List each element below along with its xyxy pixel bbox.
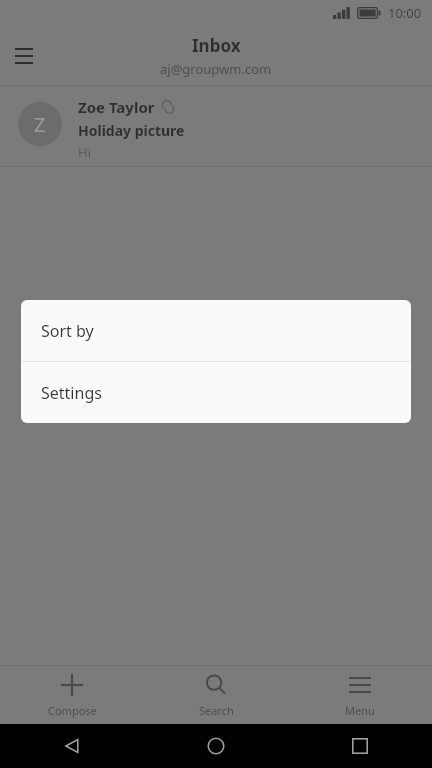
staticText: Compose xyxy=(48,703,97,718)
staticText: Inbox xyxy=(192,34,241,57)
staticText: Zoe Taylor xyxy=(78,97,155,117)
button[interactable]: Home xyxy=(199,729,233,763)
staticText: aj@groupwm.com xyxy=(160,60,272,78)
staticText: Z xyxy=(34,111,46,138)
staticText: Menu xyxy=(345,703,375,718)
staticText: Holiday picture xyxy=(78,121,185,140)
button[interactable]: Search xyxy=(144,672,288,718)
staticText: Hi xyxy=(78,143,91,161)
staticText: 10:00 xyxy=(388,4,422,22)
button[interactable]: Recent apps xyxy=(343,729,377,763)
staticText: Sort by xyxy=(41,320,94,342)
button[interactable]: Open navigation drawer xyxy=(8,40,40,72)
button[interactable]: Menu xyxy=(288,672,432,718)
button[interactable]: Settings xyxy=(21,362,411,423)
button[interactable]: Back xyxy=(55,729,89,763)
button[interactable]: Z xyxy=(0,86,432,166)
button[interactable]: Compose xyxy=(0,672,144,718)
staticText: Settings xyxy=(41,382,102,404)
button[interactable]: Sort by xyxy=(21,300,411,361)
staticText: Search xyxy=(199,703,234,718)
